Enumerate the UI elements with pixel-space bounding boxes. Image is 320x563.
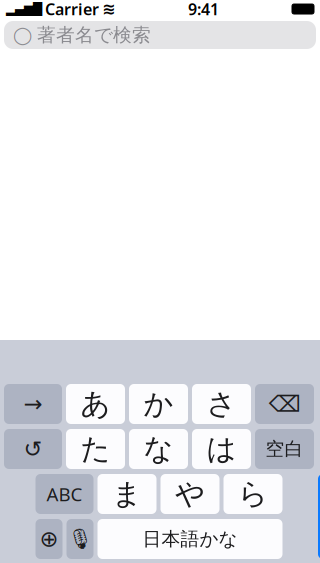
staticText: ま <box>112 476 142 512</box>
button[interactable]: や <box>160 474 219 514</box>
staticText: 日本語かな <box>142 527 237 550</box>
button[interactable]: Delete <box>255 384 314 424</box>
button[interactable]: あ <box>66 384 125 424</box>
staticText: 9:41 <box>188 0 219 20</box>
button[interactable]: ABC <box>35 474 93 514</box>
button[interactable]: 日本語かな <box>97 519 282 559</box>
button[interactable]: か <box>129 384 188 424</box>
staticText: → <box>23 391 42 417</box>
button[interactable]: さ <box>192 384 251 424</box>
staticText: は <box>206 431 236 467</box>
staticText: 空白 <box>265 437 303 460</box>
button[interactable]: Dictation <box>66 519 93 559</box>
button[interactable]: Next field <box>4 384 62 424</box>
staticText: た <box>80 431 110 467</box>
staticText: ⌫ <box>268 391 300 417</box>
button[interactable]: 完了 <box>318 474 320 559</box>
staticText: ↺ <box>23 436 42 462</box>
button[interactable]: ◯ <box>4 21 316 49</box>
button[interactable]: は <box>192 429 251 469</box>
button[interactable]: Next keyboard <box>35 519 62 559</box>
button[interactable]: Undo <box>4 429 62 469</box>
staticText: ◯ <box>13 25 32 45</box>
button[interactable]: た <box>66 429 125 469</box>
staticText: Carrier <box>45 0 99 20</box>
button[interactable]: な <box>129 429 188 469</box>
button[interactable]: ま <box>97 474 156 514</box>
staticText: 🎙 <box>67 528 92 550</box>
staticText: ABC <box>46 482 82 506</box>
button[interactable]: ら <box>223 474 282 514</box>
staticText: や <box>175 476 205 512</box>
staticText: さ <box>206 386 236 422</box>
staticText: な <box>143 431 173 467</box>
staticText: 著者名で検索 <box>37 23 151 46</box>
staticText: ⊕ <box>39 526 58 552</box>
staticText: ▂▄▆█ <box>6 2 42 16</box>
staticText: あ <box>80 386 110 422</box>
staticText: ら <box>238 476 268 512</box>
staticText: ≋ <box>102 0 115 18</box>
staticText: か <box>143 386 173 422</box>
button[interactable]: Space <box>255 429 314 469</box>
